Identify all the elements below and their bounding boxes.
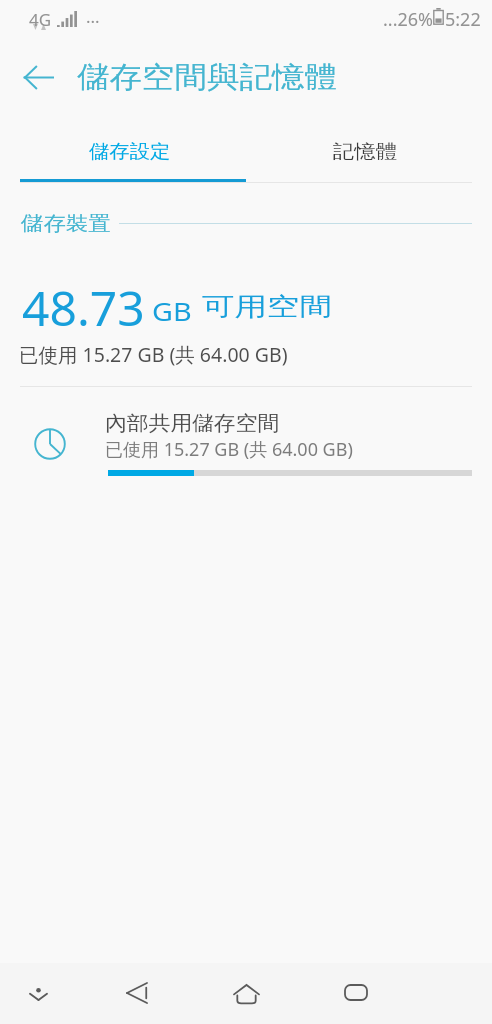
button[interactable]: Home [222,970,270,1018]
staticText: 內部共用儲存空間 [105,411,279,436]
staticText: 已使用 15.27 GB (共 64.00 GB) [19,341,288,368]
staticText: 48.73 [22,275,145,340]
staticText: 已使用 15.27 GB (共 64.00 GB) [105,437,353,462]
button[interactable]: 儲存設定 [14,123,240,181]
button[interactable]: 內部共用儲存空間 [0,387,492,489]
staticText: 儲存設定 [89,140,170,164]
staticText: ... [86,5,100,28]
staticText: 儲存裝置 [21,211,111,236]
staticText: 儲存空間與記憶體 [77,59,337,96]
button[interactable]: Back [113,969,161,1017]
staticText: 記憶體 [333,140,397,164]
staticText: 可用空間 [202,291,332,322]
staticText: ...26% [383,7,434,32]
button[interactable]: 記憶體 [248,123,474,181]
staticText: GB [152,294,192,328]
staticText: 4G [29,8,52,31]
staticText: 5:22 [445,7,481,32]
button[interactable]: Back [18,57,58,97]
button[interactable]: Recent apps [332,968,380,1016]
button[interactable]: Hide navigation bar [14,965,62,1013]
